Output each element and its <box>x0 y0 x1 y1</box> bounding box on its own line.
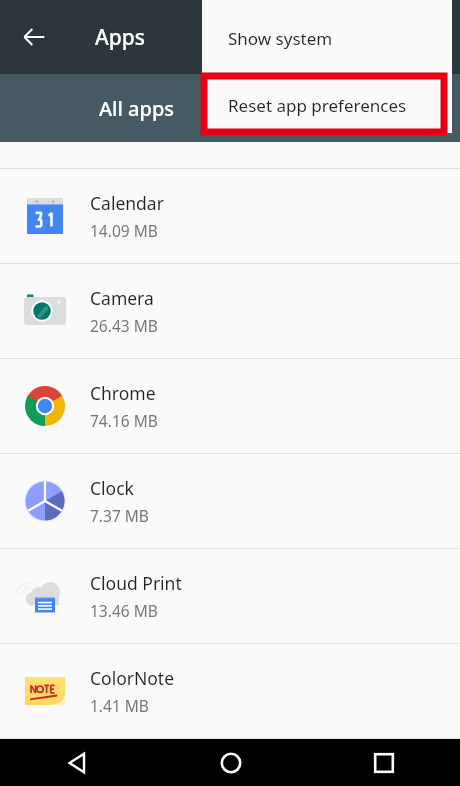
button[interactable]: All apps <box>0 74 460 142</box>
staticText: 26.43 MB <box>90 315 158 336</box>
staticText: Camera <box>90 286 154 310</box>
staticText: Reset app preferences <box>228 94 407 117</box>
staticText: 14.09 MB <box>90 220 158 241</box>
button[interactable]: ColorNote <box>0 644 460 738</box>
button[interactable]: Cloud Print <box>0 549 460 643</box>
button[interactable]: Reset app preferences <box>202 77 452 133</box>
staticText: All apps <box>99 95 175 122</box>
button[interactable]: Back <box>0 739 154 786</box>
button[interactable]: Back <box>12 15 56 59</box>
staticText: 1.41 MB <box>90 695 149 716</box>
button[interactable]: Camera <box>0 264 460 358</box>
staticText: Show system <box>228 27 333 50</box>
staticText: Clock <box>90 476 134 500</box>
staticText: 74.16 MB <box>90 410 158 431</box>
staticText: Apps <box>95 23 146 52</box>
staticText: 13.46 MB <box>90 600 158 621</box>
staticText: 7.37 MB <box>90 505 149 526</box>
button[interactable]: Calendar <box>0 169 460 263</box>
staticText: Chrome <box>90 381 156 405</box>
button[interactable]: Chrome <box>0 359 460 453</box>
button[interactable]: Clock <box>0 454 460 548</box>
button[interactable]: Show system <box>202 0 452 77</box>
staticText: Cloud Print <box>90 571 182 595</box>
button[interactable]: Recent apps <box>307 739 460 786</box>
staticText: Calendar <box>90 191 164 215</box>
staticText: ColorNote <box>90 666 175 690</box>
button[interactable]: Home <box>154 739 307 786</box>
